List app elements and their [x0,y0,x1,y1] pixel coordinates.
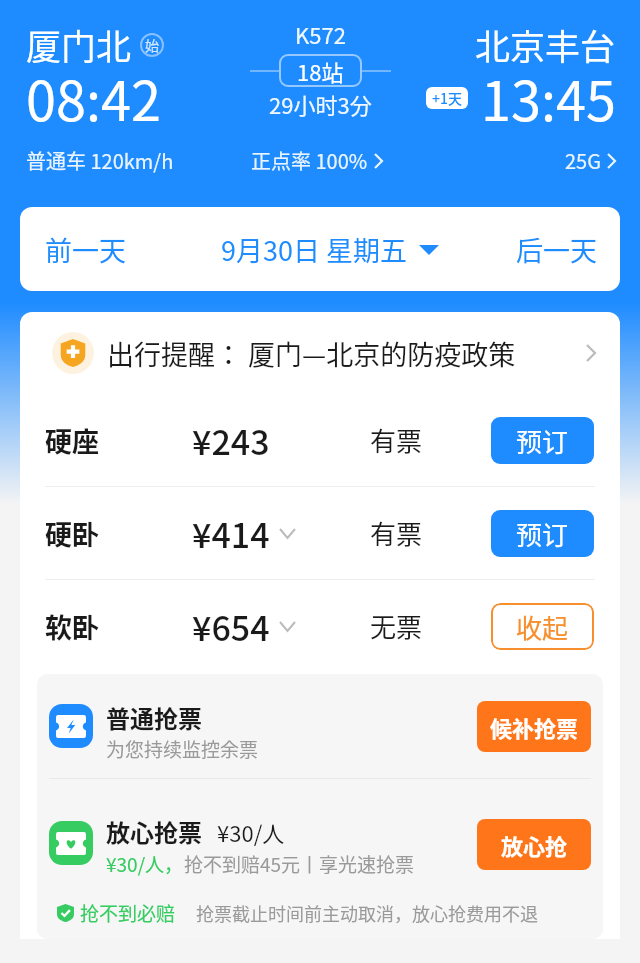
staticText: +1天 [432,88,462,108]
button[interactable]: 收起 [491,603,594,650]
button[interactable]: 硬卧 [20,487,620,579]
staticText: 北京丰台 [475,19,616,70]
staticText: 有票 [370,421,423,459]
button[interactable]: 后一天 [496,207,616,291]
staticText: 普通车 120km/h [26,146,174,175]
staticText: 13:45 [481,58,616,136]
button[interactable]: 放心抢票 [37,779,603,887]
button[interactable]: 前一天 [25,207,145,291]
staticText: 前一天 [45,230,126,269]
button[interactable]: 9月30日 星期五 [221,207,439,291]
staticText: 放心抢票 [106,814,202,849]
staticText: 18站 [297,55,344,87]
staticText: 29小时3分 [269,88,372,120]
staticText: 有票 [370,514,423,552]
staticText: 预订 [516,422,569,460]
staticText: 厦门北 [26,19,132,70]
staticText: 正点率 100% [251,146,368,175]
staticText: 硬卧 [45,514,99,553]
staticText: ¥654 [192,602,270,651]
staticText: ¥30/人， [106,850,184,878]
staticText: 无票 [370,607,423,645]
staticText: K572 [295,18,346,50]
staticText: 抢不到赔45元丨享光速抢票 [184,850,415,878]
staticText: 软卧 [45,607,99,646]
button[interactable]: 普通抢票 [37,674,603,778]
staticText: ¥243 [192,416,270,465]
staticText: ¥414 [192,509,270,558]
staticText: 抢不到必赔 [80,899,176,927]
staticText: 放心抢 [501,829,568,861]
staticText: 硬座 [45,421,99,460]
staticText: 08:42 [26,58,161,136]
staticText: 收起 [516,608,569,646]
button[interactable]: 正点率 100% [251,146,383,175]
staticText: 候补抢票 [490,711,579,743]
staticText: 9月30日 星期五 [221,230,408,269]
button[interactable]: 出行提醒： 厦门—北京的防疫政策 [20,312,620,394]
button[interactable]: 放心抢 [477,819,591,870]
button[interactable]: 25G [565,146,616,175]
staticText: 后一天 [516,230,597,269]
button[interactable]: 硬座 [20,394,620,486]
staticText: 25G [565,146,601,175]
staticText: 为您持续监控余票 [106,735,259,763]
staticText: 始 [145,35,159,55]
button[interactable]: 软卧 [20,580,620,672]
staticText: ¥30/人 [217,816,285,848]
staticText: 抢票截止时间前主动取消，放心抢费用不退 [196,900,538,926]
button[interactable]: 预订 [491,510,594,557]
button[interactable]: 候补抢票 [477,701,591,752]
staticText: 出行提醒： 厦门—北京的防疫政策 [107,334,516,373]
staticText: 普通抢票 [106,700,202,735]
staticText: 预订 [516,515,569,553]
button[interactable]: 预订 [491,417,594,464]
